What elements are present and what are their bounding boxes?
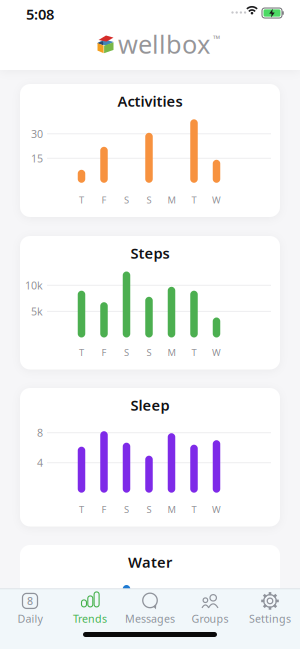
staticText: W (212, 194, 221, 206)
staticText: W (212, 346, 221, 359)
staticText: ™ (213, 33, 220, 45)
staticText: Groups (191, 611, 228, 626)
staticText: T (191, 194, 196, 206)
staticText: Messages (125, 611, 175, 626)
button[interactable]: Settings (240, 589, 300, 629)
staticText: 8 (37, 426, 43, 440)
button[interactable]: 8 (0, 589, 60, 629)
staticText: 4 (37, 456, 43, 470)
staticText: Sleep (130, 395, 169, 415)
staticText: 10k (25, 278, 43, 292)
staticText: 15 (31, 151, 43, 165)
staticText: Steps (130, 243, 169, 263)
staticText: 30 (31, 127, 43, 141)
button[interactable]: wellbox (96, 27, 220, 61)
staticText: M (167, 346, 175, 359)
staticText: F (101, 346, 106, 359)
staticText: S (124, 194, 129, 206)
staticText: M (167, 503, 175, 516)
staticText: wellbox (118, 27, 210, 61)
staticText: S (124, 346, 129, 359)
staticText: T (79, 346, 84, 359)
staticText: S (146, 346, 151, 359)
staticText: S (124, 503, 129, 516)
staticText: T (79, 503, 84, 516)
staticText: Activities (117, 91, 182, 111)
staticText: Trends (73, 611, 107, 626)
staticText: F (101, 194, 106, 206)
staticText: S (146, 503, 151, 516)
staticText: W (212, 503, 221, 516)
staticText: Water (128, 552, 172, 572)
staticText: M (167, 194, 175, 206)
staticText: T (191, 503, 196, 516)
button[interactable]: Trends (60, 589, 120, 629)
button[interactable]: Groups (180, 589, 240, 629)
staticText: T (79, 194, 84, 206)
staticText: 5k (31, 304, 43, 318)
staticText: 5:08 (26, 4, 54, 24)
button[interactable]: Messages (120, 589, 180, 629)
staticText: Daily (17, 611, 42, 626)
staticText: S (146, 194, 151, 206)
staticText: Settings (249, 611, 291, 626)
staticText: 8 (27, 594, 33, 608)
staticText: F (101, 503, 106, 516)
staticText: T (191, 346, 196, 359)
